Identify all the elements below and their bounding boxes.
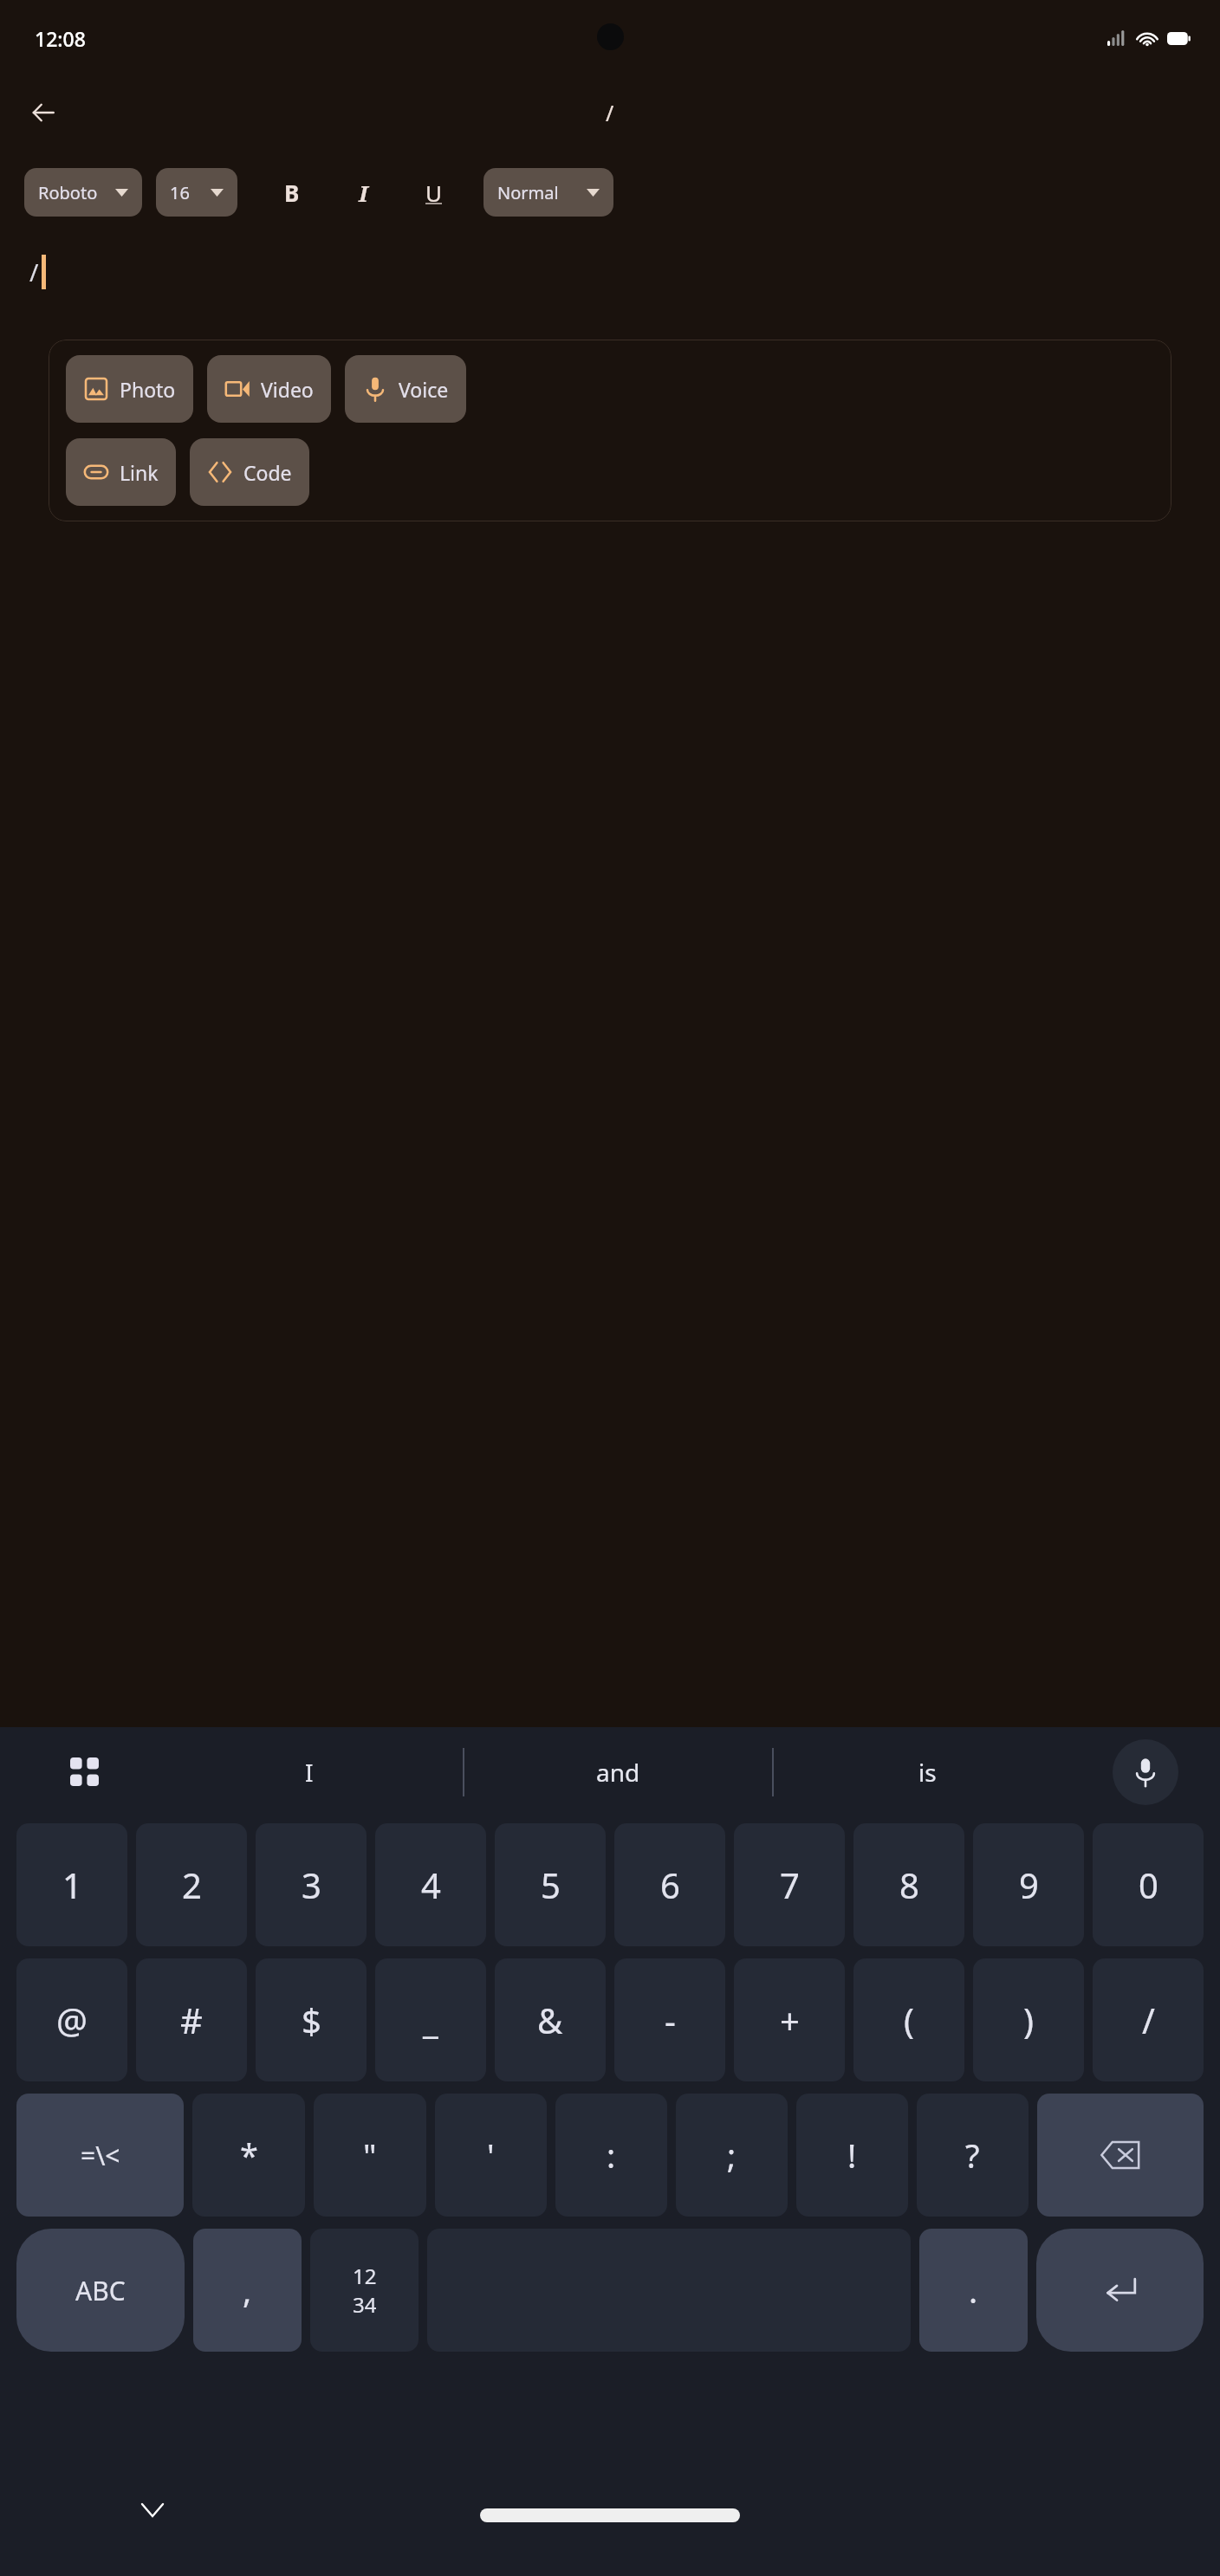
staticText: ' [487, 2133, 495, 2178]
button[interactable]: & [495, 1958, 606, 2081]
staticText: ! [847, 2133, 857, 2178]
staticText: - [665, 1997, 676, 2043]
staticText: @ [56, 1997, 88, 2043]
button[interactable]: _ [375, 1958, 486, 2081]
button[interactable]: ) [973, 1958, 1084, 2081]
staticText: =\< [81, 2138, 120, 2173]
staticText: . [969, 2268, 978, 2313]
button[interactable]: ( [853, 1958, 964, 2081]
button[interactable]: + [734, 1958, 845, 2081]
button[interactable]: Photo [66, 355, 193, 423]
button[interactable]: ' [435, 2094, 547, 2217]
button[interactable]: and [464, 1727, 772, 1817]
staticText: 4 [421, 1861, 441, 1908]
staticText: ) [1023, 1997, 1034, 2043]
button[interactable]: Voice [345, 355, 466, 423]
staticText: 5 [541, 1861, 561, 1908]
button[interactable]: / [1093, 1958, 1204, 2081]
button[interactable]: @ [16, 1958, 127, 2081]
staticText: ; [727, 2133, 737, 2178]
staticText: 8 [899, 1861, 919, 1908]
staticText: U [425, 178, 443, 208]
staticText: Code [243, 459, 292, 486]
staticText: / [29, 256, 39, 288]
button[interactable]: Back [19, 88, 68, 137]
staticText: 2 [182, 1861, 202, 1908]
button[interactable]: 16 [156, 168, 237, 217]
button[interactable]: 2 [136, 1823, 247, 1946]
staticText: and [596, 1756, 640, 1789]
button[interactable]: $ [256, 1958, 367, 2081]
staticText: ? [965, 2133, 980, 2178]
button[interactable]: is [774, 1727, 1081, 1817]
button[interactable]: , [193, 2229, 302, 2352]
button[interactable]: : [555, 2094, 667, 2217]
button[interactable]: I [156, 1727, 463, 1817]
button[interactable]: 8 [853, 1823, 964, 1946]
staticText: Photo [120, 376, 176, 403]
staticText: Normal [497, 181, 559, 204]
button[interactable]: * [192, 2094, 305, 2217]
button[interactable]: 6 [614, 1823, 725, 1946]
button[interactable]: 9 [973, 1823, 1084, 1946]
staticText: * [240, 2133, 258, 2178]
button[interactable]: Video [207, 355, 331, 423]
button[interactable]: # [136, 1958, 247, 2081]
staticText: 12 [353, 2262, 377, 2290]
button[interactable]: Enter [1036, 2229, 1204, 2352]
staticText: _ [423, 1997, 438, 2043]
button[interactable]: ; [676, 2094, 788, 2217]
staticText: 16 [170, 181, 190, 204]
staticText: & [537, 1997, 563, 2043]
button[interactable]: 4 [375, 1823, 486, 1946]
button[interactable]: ABC [16, 2229, 185, 2352]
staticText: : [607, 2133, 616, 2178]
button[interactable]: Voice input [1113, 1739, 1178, 1805]
button[interactable]: 3 [256, 1823, 367, 1946]
staticText: " [363, 2133, 377, 2178]
staticText: ( [904, 1997, 914, 2043]
button[interactable]: " [314, 2094, 426, 2217]
button[interactable]: =\< [16, 2094, 184, 2217]
staticText: 1 [62, 1861, 82, 1908]
staticText: is [918, 1756, 937, 1789]
button[interactable]: 7 [734, 1823, 845, 1946]
staticText: 6 [660, 1861, 680, 1908]
button[interactable]: . [919, 2229, 1028, 2352]
button[interactable]: ! [796, 2094, 908, 2217]
staticText: $ [302, 1997, 321, 2043]
button[interactable]: 0 [1093, 1823, 1204, 1946]
button[interactable]: U [411, 169, 457, 216]
button[interactable]: - [614, 1958, 725, 2081]
staticText: 3 [302, 1861, 321, 1908]
staticText: I [359, 178, 368, 208]
staticText: , [243, 2268, 252, 2313]
button[interactable]: Link [66, 438, 176, 506]
staticText: Link [120, 459, 159, 486]
button[interactable]: 5 [495, 1823, 606, 1946]
button[interactable]: Code [190, 438, 309, 506]
staticText: / [606, 98, 614, 127]
button[interactable]: I [340, 169, 386, 216]
staticText: 7 [780, 1861, 800, 1908]
button[interactable]: Roboto [24, 168, 142, 217]
staticText: B [284, 178, 300, 208]
staticText: 0 [1139, 1861, 1158, 1908]
staticText: + [780, 1997, 800, 2043]
button[interactable]: ? [917, 2094, 1029, 2217]
button[interactable]: B [269, 169, 315, 216]
button[interactable]: Normal [483, 168, 613, 217]
button[interactable]: Numbers [310, 2229, 419, 2352]
button[interactable]: Keyboard options [61, 1748, 109, 1796]
staticText: 34 [353, 2290, 377, 2319]
staticText: I [305, 1756, 314, 1789]
button[interactable]: 1 [16, 1823, 127, 1946]
staticText: Video [261, 376, 314, 403]
staticText: / [1142, 1997, 1155, 2043]
staticText: Voice [399, 376, 449, 403]
button[interactable]: Backspace [1037, 2094, 1204, 2217]
button[interactable]: Hide keyboard [130, 2488, 175, 2533]
staticText: # [180, 1997, 203, 2043]
staticText: 9 [1019, 1861, 1039, 1908]
